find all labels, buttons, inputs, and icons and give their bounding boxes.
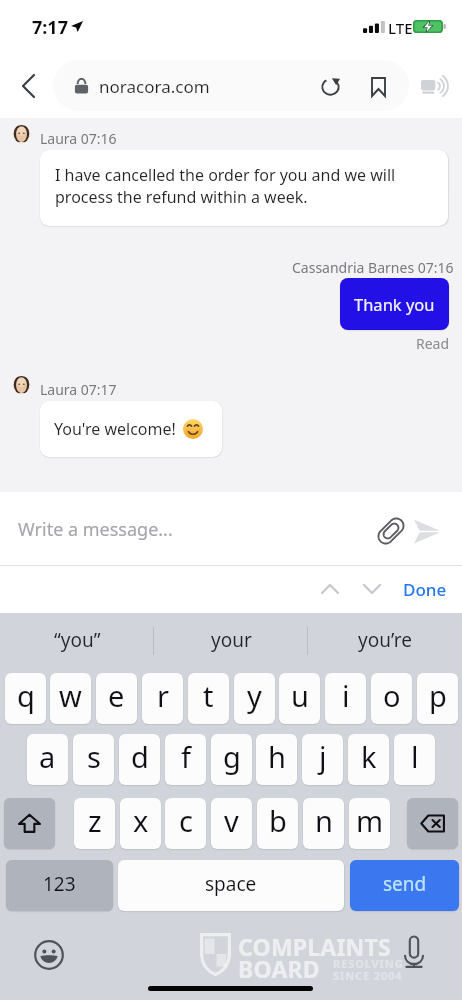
staticText: r <box>157 676 169 715</box>
button[interactable]: b <box>257 798 298 849</box>
staticText: Write a message... <box>18 517 173 542</box>
staticText: COMPLAINTS <box>238 931 391 962</box>
staticText: i <box>342 676 350 715</box>
staticText: y <box>247 676 262 715</box>
button[interactable]: q <box>5 673 46 724</box>
staticText: z <box>88 801 102 840</box>
button[interactable]: Back <box>5 63 51 109</box>
staticText: u <box>291 676 309 715</box>
button[interactable]: i <box>325 673 366 724</box>
staticText: 123 <box>43 871 76 897</box>
button[interactable]: “you” <box>0 613 154 666</box>
staticText: x <box>133 801 149 840</box>
staticText: BOARD <box>238 953 320 984</box>
button[interactable]: Next field <box>351 568 393 610</box>
button[interactable]: Backspace <box>407 798 458 849</box>
staticText: j <box>319 737 327 776</box>
staticText: “you” <box>54 627 101 653</box>
staticText: 7:17 <box>32 15 68 40</box>
staticText: a <box>39 737 56 776</box>
staticText: RESOLVING <box>333 956 404 971</box>
button[interactable]: h <box>256 734 297 785</box>
button[interactable]: Reload <box>308 64 353 109</box>
button[interactable]: v <box>211 798 252 849</box>
button[interactable]: t <box>188 673 229 724</box>
staticText: process the refund within a week. <box>55 186 308 208</box>
button[interactable]: s <box>73 734 114 785</box>
staticText: o <box>383 676 401 715</box>
staticText: I have cancelled the order for you and w… <box>55 164 396 186</box>
button[interactable]: space <box>118 860 344 911</box>
button[interactable]: I have cancelled the order for you and w… <box>40 150 448 226</box>
staticText: LTE <box>388 18 413 38</box>
staticText: you’re <box>358 627 412 653</box>
staticText: h <box>268 737 286 776</box>
staticText: k <box>361 737 377 776</box>
button[interactable]: send <box>350 860 459 911</box>
staticText: Laura 07:17 <box>40 380 117 399</box>
staticText: c <box>179 801 193 840</box>
staticText: n <box>315 801 333 840</box>
button[interactable]: Shift <box>4 798 55 849</box>
staticText: s <box>87 737 101 776</box>
button[interactable]: 123 <box>6 860 113 911</box>
staticText: noracora.com <box>99 75 210 98</box>
button[interactable]: n <box>303 798 344 849</box>
button[interactable]: l <box>394 734 435 785</box>
button[interactable]: x <box>120 798 161 849</box>
staticText: v <box>224 801 239 840</box>
button[interactable]: w <box>50 673 91 724</box>
button[interactable]: Attach file <box>368 508 414 554</box>
staticText: q <box>17 676 35 715</box>
button[interactable]: Done <box>396 568 454 610</box>
button[interactable]: Thank you <box>340 278 449 330</box>
button[interactable]: r <box>142 673 183 724</box>
button[interactable]: Previous field <box>309 568 351 610</box>
staticText: e <box>108 676 125 715</box>
button[interactable]: Send message <box>404 508 450 554</box>
button[interactable]: e <box>96 673 137 724</box>
staticText: g <box>223 737 241 776</box>
staticText: Laura 07:16 <box>40 129 117 148</box>
staticText: d <box>131 737 149 776</box>
button[interactable]: p <box>417 673 458 724</box>
staticText: space <box>205 871 257 897</box>
staticText: t <box>203 676 214 715</box>
button[interactable]: z <box>74 798 115 849</box>
staticText: your <box>211 627 252 653</box>
button[interactable]: Voice input <box>392 930 436 974</box>
button[interactable]: noracora.com <box>53 60 409 111</box>
button[interactable]: Emoji keyboard <box>27 933 71 977</box>
button[interactable]: your <box>154 613 308 666</box>
staticText: Read <box>416 334 450 353</box>
button[interactable]: Cast <box>411 63 457 109</box>
button[interactable]: k <box>348 734 389 785</box>
button[interactable]: Bookmark <box>356 64 401 109</box>
staticText: w <box>59 676 82 715</box>
button[interactable]: o <box>371 673 412 724</box>
staticText: SINCE 2004 <box>333 968 403 983</box>
button[interactable]: g <box>211 734 252 785</box>
button[interactable]: j <box>302 734 343 785</box>
button[interactable]: a <box>27 734 68 785</box>
button[interactable]: m <box>349 798 390 849</box>
staticText: m <box>356 801 384 840</box>
button[interactable]: u <box>279 673 320 724</box>
button[interactable]: you’re <box>308 613 462 666</box>
button[interactable]: You're welcome! <box>40 401 222 457</box>
staticText: Thank you <box>354 293 435 315</box>
staticText: f <box>181 737 191 776</box>
button[interactable]: d <box>119 734 160 785</box>
staticText: l <box>411 737 419 776</box>
staticText: Done <box>403 578 447 601</box>
button[interactable]: c <box>165 798 206 849</box>
button[interactable]: y <box>234 673 275 724</box>
button[interactable]: f <box>165 734 206 785</box>
staticText: send <box>383 871 427 897</box>
staticText: b <box>269 801 287 840</box>
staticText: p <box>429 676 447 715</box>
staticText: You're welcome! <box>54 418 176 440</box>
staticText: Cassandria Barnes 07:16 <box>292 258 454 277</box>
